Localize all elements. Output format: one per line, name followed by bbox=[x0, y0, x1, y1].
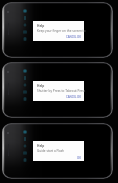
button[interactable]: Record bbox=[23, 16, 27, 20]
button[interactable]: Help bbox=[33, 141, 84, 161]
button[interactable]: OK bbox=[77, 95, 81, 99]
staticText: OK bbox=[77, 95, 81, 99]
button[interactable]: Settings bbox=[23, 90, 27, 94]
button[interactable]: Record bbox=[23, 137, 27, 141]
staticText: OK bbox=[77, 156, 81, 160]
staticText: CANCEL bbox=[66, 95, 77, 99]
button[interactable]: Settings bbox=[23, 30, 27, 34]
staticText: Help bbox=[37, 24, 45, 28]
staticText: Help bbox=[37, 84, 45, 88]
button[interactable]: CANCEL bbox=[66, 95, 77, 99]
staticText: Guide start a Flash bbox=[37, 149, 65, 153]
button[interactable]: Help bbox=[33, 21, 84, 41]
button[interactable]: OK bbox=[77, 156, 81, 160]
button[interactable]: Favorite bbox=[23, 144, 27, 148]
button[interactable]: CANCEL bbox=[66, 35, 77, 39]
staticText: Shutter by Press to Takeout Press Check … bbox=[37, 89, 88, 93]
staticText: CANCEL bbox=[66, 35, 77, 39]
button[interactable]: Capture bbox=[23, 69, 27, 73]
button[interactable]: Favorite bbox=[23, 23, 27, 27]
staticText: Keep your finger on the screen to take a… bbox=[37, 29, 88, 33]
button[interactable]: Settings bbox=[23, 151, 27, 155]
button[interactable]: Favorite bbox=[23, 83, 27, 87]
button[interactable]: Help bbox=[23, 37, 27, 41]
button[interactable]: Capture bbox=[23, 130, 27, 134]
button[interactable]: OK bbox=[77, 35, 81, 39]
button[interactable]: Capture bbox=[23, 9, 27, 13]
staticText: Help bbox=[37, 144, 45, 148]
button[interactable]: Help bbox=[33, 81, 84, 101]
button[interactable]: Help bbox=[23, 158, 27, 162]
staticText: OK bbox=[77, 35, 81, 39]
button[interactable]: Help bbox=[23, 97, 27, 101]
button[interactable]: Record bbox=[23, 76, 27, 80]
